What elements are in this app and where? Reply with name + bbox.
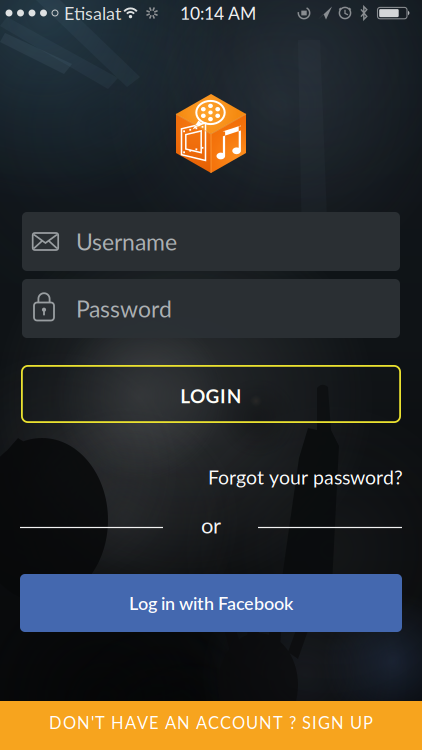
button[interactable]: Log in with Facebook xyxy=(20,574,402,632)
button[interactable]: Forgot your password? xyxy=(208,465,403,489)
staticText: D O N ' T H A V E A N A C C O U N T ? S … xyxy=(49,713,373,732)
staticText: LOGIN xyxy=(180,385,242,407)
staticText: Username xyxy=(76,228,177,255)
staticText: Forgot your password? xyxy=(208,465,403,489)
button[interactable]: Password xyxy=(22,279,400,338)
staticText: or xyxy=(201,512,221,538)
button[interactable]: D O N ' T H A V E A N A C C O U N T ? S … xyxy=(0,701,422,750)
staticText: Log in with Facebook xyxy=(129,592,293,614)
staticText: Etisalat xyxy=(64,2,121,24)
staticText: 10:14 AM xyxy=(180,2,256,23)
button[interactable]: LOGIN xyxy=(21,365,401,423)
staticText: Password xyxy=(76,295,172,322)
button[interactable]: Username xyxy=(22,212,400,271)
